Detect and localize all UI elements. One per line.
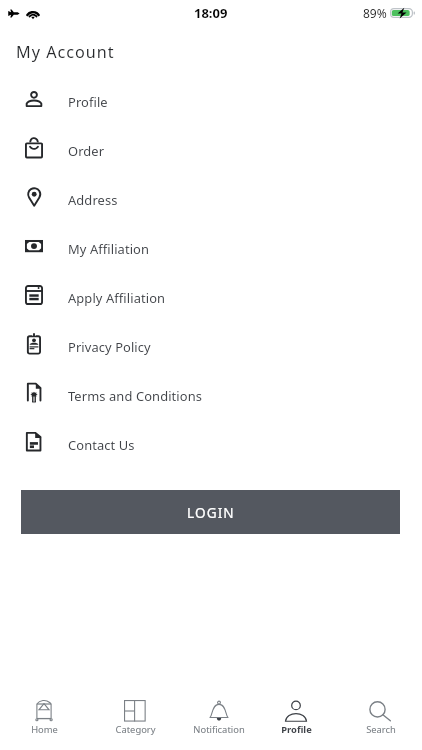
button[interactable]: Order bbox=[0, 123, 422, 172]
button[interactable]: Category bbox=[100, 698, 170, 740]
staticText: Search bbox=[366, 723, 396, 736]
button[interactable]: Terms and Conditions bbox=[0, 368, 422, 417]
staticText: 18:09 bbox=[194, 4, 228, 22]
staticText: My Affiliation bbox=[68, 240, 150, 258]
staticText: My Account bbox=[16, 41, 115, 63]
staticText: Privacy Policy bbox=[68, 338, 151, 356]
staticText: LOGIN bbox=[187, 503, 235, 522]
button[interactable]: Profile bbox=[261, 698, 331, 740]
button[interactable]: Profile bbox=[0, 74, 422, 123]
staticText: Profile bbox=[281, 723, 312, 736]
staticText: Category bbox=[115, 723, 156, 736]
button[interactable]: Notification bbox=[184, 698, 254, 740]
button[interactable]: My Affiliation bbox=[0, 221, 422, 270]
staticText: Contact Us bbox=[68, 436, 135, 454]
staticText: Home bbox=[31, 723, 58, 736]
button[interactable]: Search bbox=[346, 698, 416, 740]
staticText: Order bbox=[68, 142, 105, 160]
button[interactable]: Home bbox=[9, 698, 79, 740]
staticText: 89% bbox=[363, 5, 387, 21]
staticText: Terms and Conditions bbox=[68, 387, 202, 405]
staticText: Address bbox=[68, 191, 118, 209]
staticText: Profile bbox=[68, 93, 108, 111]
button[interactable]: LOGIN bbox=[21, 490, 400, 534]
button[interactable]: Privacy Policy bbox=[0, 319, 422, 368]
staticText: Notification bbox=[193, 723, 245, 736]
button[interactable]: Address bbox=[0, 172, 422, 221]
button[interactable]: Apply Affiliation bbox=[0, 270, 422, 319]
button[interactable]: Contact Us bbox=[0, 417, 422, 466]
staticText: Apply Affiliation bbox=[68, 289, 166, 307]
